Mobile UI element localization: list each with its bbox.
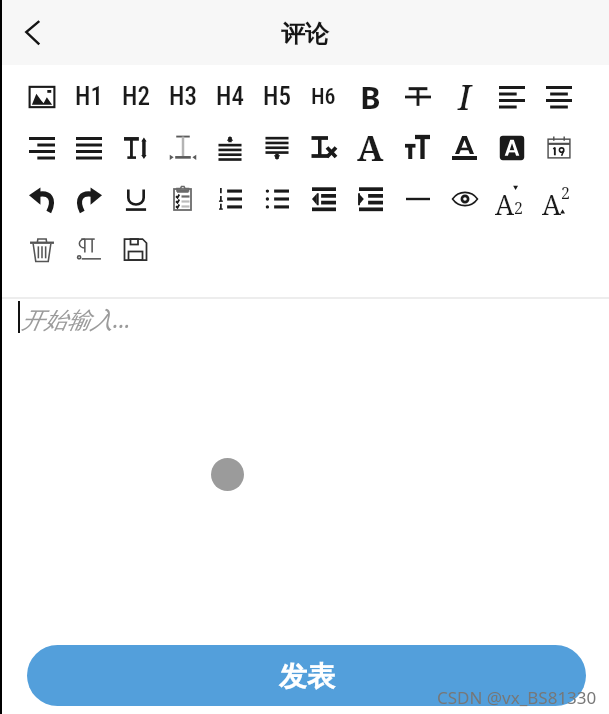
button[interactable]: Text color [441, 122, 488, 173]
button[interactable]: Font size [394, 122, 441, 173]
button[interactable]: Heading 5 [253, 71, 300, 122]
button[interactable]: Horizontal rule [394, 173, 441, 224]
button[interactable]: 发表 [27, 645, 586, 706]
staticText: H3 [169, 82, 197, 111]
staticText: A [357, 124, 384, 172]
button[interactable]: Back [0, 0, 56, 65]
staticText: H2 [122, 82, 150, 111]
button[interactable]: Save [112, 224, 159, 275]
button[interactable]: Align right [18, 122, 65, 173]
staticText: 评论 [281, 19, 329, 49]
button[interactable]: Letter spacing [159, 122, 206, 173]
button[interactable]: Date [535, 122, 582, 173]
button[interactable]: Insert image [18, 71, 65, 122]
staticText: I [458, 74, 471, 120]
staticText: B [360, 76, 381, 118]
button[interactable]: Paste [159, 173, 206, 224]
button[interactable]: Align bottom [253, 122, 300, 173]
button[interactable]: Bold [347, 71, 394, 122]
staticText: H1 [75, 82, 103, 111]
button[interactable]: Background color [488, 122, 535, 173]
staticText: H5 [263, 82, 291, 111]
button[interactable]: Delete [18, 224, 65, 275]
button[interactable]: Paragraph [65, 224, 112, 275]
button[interactable]: Heading 3 [159, 71, 206, 122]
button[interactable]: Font family [347, 122, 394, 173]
button[interactable]: Align top [206, 122, 253, 173]
button[interactable]: Heading 4 [206, 71, 253, 122]
button[interactable]: Redo [65, 173, 112, 224]
button[interactable]: Line height [112, 122, 159, 173]
staticText: H4 [216, 82, 244, 111]
staticText: 2 [514, 197, 523, 219]
staticText: A [495, 186, 515, 216]
staticText: 开始输入... [21, 303, 131, 334]
button[interactable]: Ordered list [206, 173, 253, 224]
button[interactable]: Superscript [535, 173, 582, 224]
button[interactable]: Clear format [300, 122, 347, 173]
button[interactable]: Heading 2 [112, 71, 159, 122]
staticText: A [542, 186, 562, 216]
button[interactable]: Align left [488, 71, 535, 122]
staticText: 2 [561, 182, 570, 204]
button[interactable]: Bullet list [253, 173, 300, 224]
button[interactable]: Heading 6 [300, 71, 347, 122]
button[interactable]: Indent [347, 173, 394, 224]
button[interactable]: Strikethrough [394, 71, 441, 122]
button[interactable]: Preview [441, 173, 488, 224]
button[interactable]: Undo [18, 173, 65, 224]
button[interactable]: Underline [112, 173, 159, 224]
button[interactable]: Justify [65, 122, 112, 173]
button[interactable]: Heading 1 [65, 71, 112, 122]
staticText: 发表 [279, 659, 335, 694]
staticText: H6 [311, 84, 336, 110]
button[interactable]: Italic [441, 71, 488, 122]
button[interactable]: Outdent [300, 173, 347, 224]
button[interactable]: Subscript [488, 173, 535, 224]
staticText: CSDN @vx_BS81330 [437, 686, 597, 709]
button[interactable]: Align center [535, 71, 582, 122]
